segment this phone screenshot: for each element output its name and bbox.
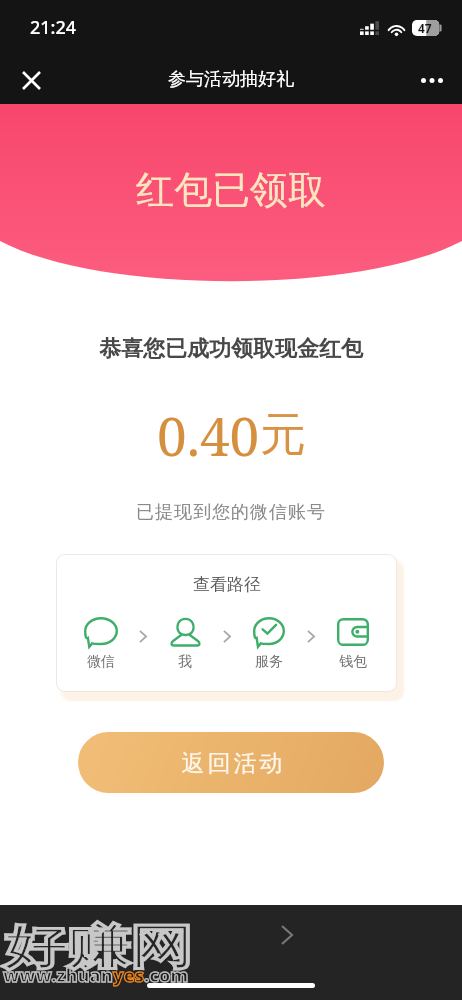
staticText: 红包已领取 xyxy=(136,166,326,214)
staticText: 好赚网 xyxy=(4,918,193,977)
button[interactable]: 查看路径 xyxy=(57,555,396,691)
button[interactable]: Close xyxy=(13,62,49,98)
staticText: 元 xyxy=(260,406,306,464)
button[interactable]: 返回活动 xyxy=(78,732,384,793)
staticText: 已提现到您的微信账号 xyxy=(0,501,462,524)
staticText: 0.40 xyxy=(157,399,260,471)
staticText: 服务 xyxy=(255,653,283,671)
button[interactable]: Next xyxy=(275,923,299,947)
staticText: 查看路径 xyxy=(193,574,261,595)
staticText: 好赚网 xyxy=(4,918,193,977)
staticText: 微信 xyxy=(87,653,115,671)
staticText: yes xyxy=(113,964,144,987)
staticText: .com xyxy=(144,964,189,987)
staticText: www.zhuan xyxy=(3,964,113,987)
staticText: 参与活动抽好礼 xyxy=(168,68,294,91)
staticText: www.zhuan xyxy=(3,964,113,987)
staticText: 返回活动 xyxy=(180,749,284,778)
button[interactable]: More options xyxy=(414,62,450,98)
staticText: 钱包 xyxy=(339,653,367,671)
staticText: 47 xyxy=(418,20,432,36)
staticText: yes xyxy=(113,964,144,987)
staticText: 恭喜您已成功领取现金红包 xyxy=(0,335,462,363)
staticText: .com xyxy=(144,964,189,987)
staticText: 21:24 xyxy=(30,15,77,40)
staticText: 我 xyxy=(178,653,192,671)
